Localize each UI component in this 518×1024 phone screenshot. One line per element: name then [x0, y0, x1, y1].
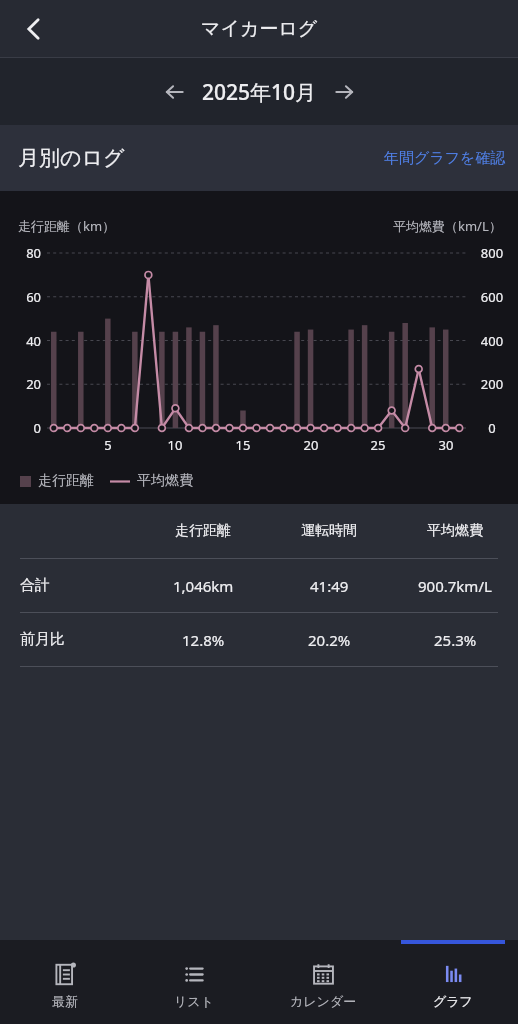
staticText: 運転時間: [301, 522, 357, 540]
button[interactable]: Next month: [321, 69, 367, 115]
button[interactable]: Previous month: [152, 69, 198, 115]
staticText: 60: [0, 288, 41, 306]
staticText: 30: [437, 436, 455, 454]
staticText: 25.3%: [434, 630, 477, 650]
button[interactable]: 年間グラフを確認: [372, 139, 518, 178]
staticText: 走行距離: [38, 472, 94, 490]
button[interactable]: リスト: [129, 940, 258, 1024]
staticText: 平均燃費: [427, 522, 483, 540]
staticText: 15: [234, 436, 252, 454]
staticText: 合計: [20, 576, 50, 595]
staticText: リスト: [174, 993, 214, 1009]
staticText: カレンダー: [290, 993, 357, 1009]
staticText: 40: [0, 332, 41, 350]
staticText: 400: [468, 332, 516, 350]
staticText: 600: [468, 288, 516, 306]
staticText: 平均燃費（km/L）: [393, 217, 502, 235]
staticText: 0: [0, 419, 41, 437]
staticText: マイカーログ: [201, 17, 318, 41]
staticText: 前月比: [20, 630, 65, 649]
staticText: 80: [0, 244, 41, 262]
staticText: グラフ: [433, 993, 473, 1009]
staticText: 1,046km: [173, 576, 234, 596]
staticText: 20: [302, 436, 320, 454]
button[interactable]: Back: [8, 3, 60, 55]
staticText: 走行距離: [175, 522, 231, 540]
staticText: 20: [0, 375, 41, 393]
staticText: 800: [468, 244, 516, 262]
button[interactable]: カレンダー: [258, 940, 388, 1024]
staticText: 25: [369, 436, 387, 454]
staticText: 12.8%: [182, 630, 225, 650]
staticText: 0: [468, 419, 516, 437]
staticText: 5: [99, 436, 117, 454]
staticText: 41:49: [310, 576, 349, 596]
staticText: 月別のログ: [18, 145, 125, 171]
button[interactable]: 最新: [0, 940, 129, 1024]
staticText: 年間グラフを確認: [384, 149, 506, 168]
staticText: 2025年10月: [202, 78, 317, 107]
staticText: 最新: [52, 993, 78, 1009]
staticText: 900.7km/L: [418, 576, 492, 596]
staticText: 200: [468, 375, 516, 393]
staticText: 走行距離（km）: [18, 217, 116, 235]
button[interactable]: グラフ: [388, 940, 518, 1024]
staticText: 平均燃費: [137, 472, 193, 490]
staticText: 20.2%: [308, 630, 351, 650]
staticText: 10: [166, 436, 184, 454]
